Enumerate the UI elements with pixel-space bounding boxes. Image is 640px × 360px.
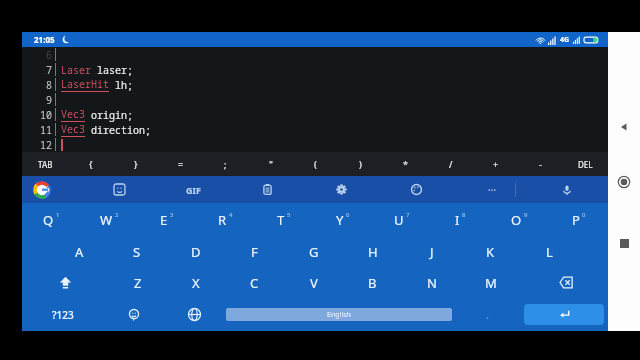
button[interactable]: + <box>473 152 518 176</box>
button[interactable]: Q <box>22 203 80 236</box>
button[interactable]: V <box>284 267 343 298</box>
button[interactable]: X <box>167 267 225 298</box>
staticText: C <box>250 274 259 292</box>
button[interactable]: H <box>343 236 402 267</box>
button[interactable]: ; <box>203 152 248 176</box>
button[interactable]: { <box>68 152 113 176</box>
button[interactable]: Backspace <box>520 267 608 298</box>
staticText: H <box>368 243 378 261</box>
staticText: } <box>134 158 138 170</box>
button[interactable]: Recents <box>614 233 634 253</box>
staticText: T <box>277 211 285 229</box>
staticText: 6 <box>346 211 350 219</box>
staticText: V <box>310 274 318 292</box>
button[interactable]: O <box>490 203 549 236</box>
button[interactable]: J <box>402 236 461 267</box>
staticText: direction; <box>85 123 151 137</box>
button[interactable]: K <box>461 236 520 267</box>
button[interactable]: Y <box>313 203 372 236</box>
button[interactable]: ( <box>293 152 338 176</box>
button[interactable]: - <box>518 152 563 176</box>
button[interactable]: Google <box>34 182 50 198</box>
button[interactable]: = <box>158 152 203 176</box>
staticText: " <box>269 158 273 170</box>
button[interactable]: G <box>284 236 343 267</box>
button[interactable]: Shift <box>22 267 109 298</box>
staticText: lh; <box>109 78 133 92</box>
button[interactable]: C <box>225 267 284 298</box>
staticText: U <box>394 211 404 229</box>
button[interactable]: T <box>254 203 313 236</box>
button[interactable]: W <box>80 203 138 236</box>
button[interactable]: L <box>520 236 579 267</box>
button[interactable]: * <box>383 152 428 176</box>
staticText: R <box>218 211 227 229</box>
button[interactable]: Change language <box>164 298 224 331</box>
button[interactable]: DEL <box>563 152 608 176</box>
staticText: L <box>546 243 553 261</box>
staticText: . <box>486 307 489 322</box>
button[interactable]: E <box>138 203 196 236</box>
staticText: laser; <box>91 63 133 77</box>
button[interactable]: More <box>454 176 529 203</box>
staticText: 8 <box>462 211 466 219</box>
button[interactable]: } <box>113 152 158 176</box>
staticText: I <box>455 211 460 229</box>
button[interactable]: ?123 <box>22 298 104 331</box>
button[interactable]: Sticker <box>82 176 156 203</box>
button[interactable]: R <box>196 203 254 236</box>
button[interactable]: S <box>108 236 166 267</box>
staticText: F <box>251 243 258 261</box>
button[interactable]: Clipboard <box>230 176 304 203</box>
staticText: 9 <box>46 93 52 107</box>
staticText: S <box>133 243 141 261</box>
staticText: { <box>89 158 93 170</box>
staticText: ( <box>314 158 317 170</box>
staticText: TAB <box>38 159 53 170</box>
button[interactable]: P <box>549 203 608 236</box>
staticText: 9 <box>524 211 528 219</box>
staticText: 7 <box>46 63 52 77</box>
staticText: * <box>403 158 408 170</box>
staticText: X <box>192 274 200 292</box>
staticText: Z <box>134 274 142 292</box>
button[interactable]: Home <box>613 171 635 193</box>
staticText: + <box>493 158 499 170</box>
staticText: E <box>160 211 168 229</box>
button[interactable]: F <box>225 236 284 267</box>
button[interactable]: D <box>166 236 225 267</box>
staticText: K <box>486 243 495 261</box>
button[interactable]: Z <box>109 267 167 298</box>
button[interactable]: " <box>248 152 293 176</box>
staticText: W <box>100 211 113 229</box>
button[interactable]: English <box>226 308 452 321</box>
button[interactable]: / <box>428 152 473 176</box>
staticText: = <box>178 158 184 170</box>
staticText: M <box>485 274 497 292</box>
button[interactable]: Voice <box>529 176 604 203</box>
staticText: B <box>368 274 377 292</box>
button[interactable]: M <box>461 267 520 298</box>
button[interactable]: I <box>431 203 490 236</box>
staticText: 1 <box>56 211 60 219</box>
button[interactable]: GIF <box>156 176 230 203</box>
staticText: origin; <box>85 108 133 122</box>
staticText: 4G <box>560 35 570 45</box>
button[interactable]: Settings <box>304 176 379 203</box>
staticText: DEL <box>578 159 593 170</box>
staticText: G <box>309 243 319 261</box>
button[interactable]: Emoji <box>104 298 164 331</box>
staticText: A <box>75 243 84 261</box>
button[interactable]: Back <box>614 117 634 137</box>
button[interactable]: TAB <box>22 152 68 176</box>
button[interactable]: N <box>402 267 461 298</box>
button[interactable]: B <box>343 267 402 298</box>
staticText: 8 <box>46 78 52 92</box>
button[interactable]: U <box>372 203 431 236</box>
button[interactable]: A <box>50 236 108 267</box>
staticText: GIF <box>186 184 201 196</box>
button[interactable]: ) <box>338 152 383 176</box>
button[interactable]: Enter <box>524 304 604 325</box>
button[interactable]: Theme <box>379 176 454 203</box>
